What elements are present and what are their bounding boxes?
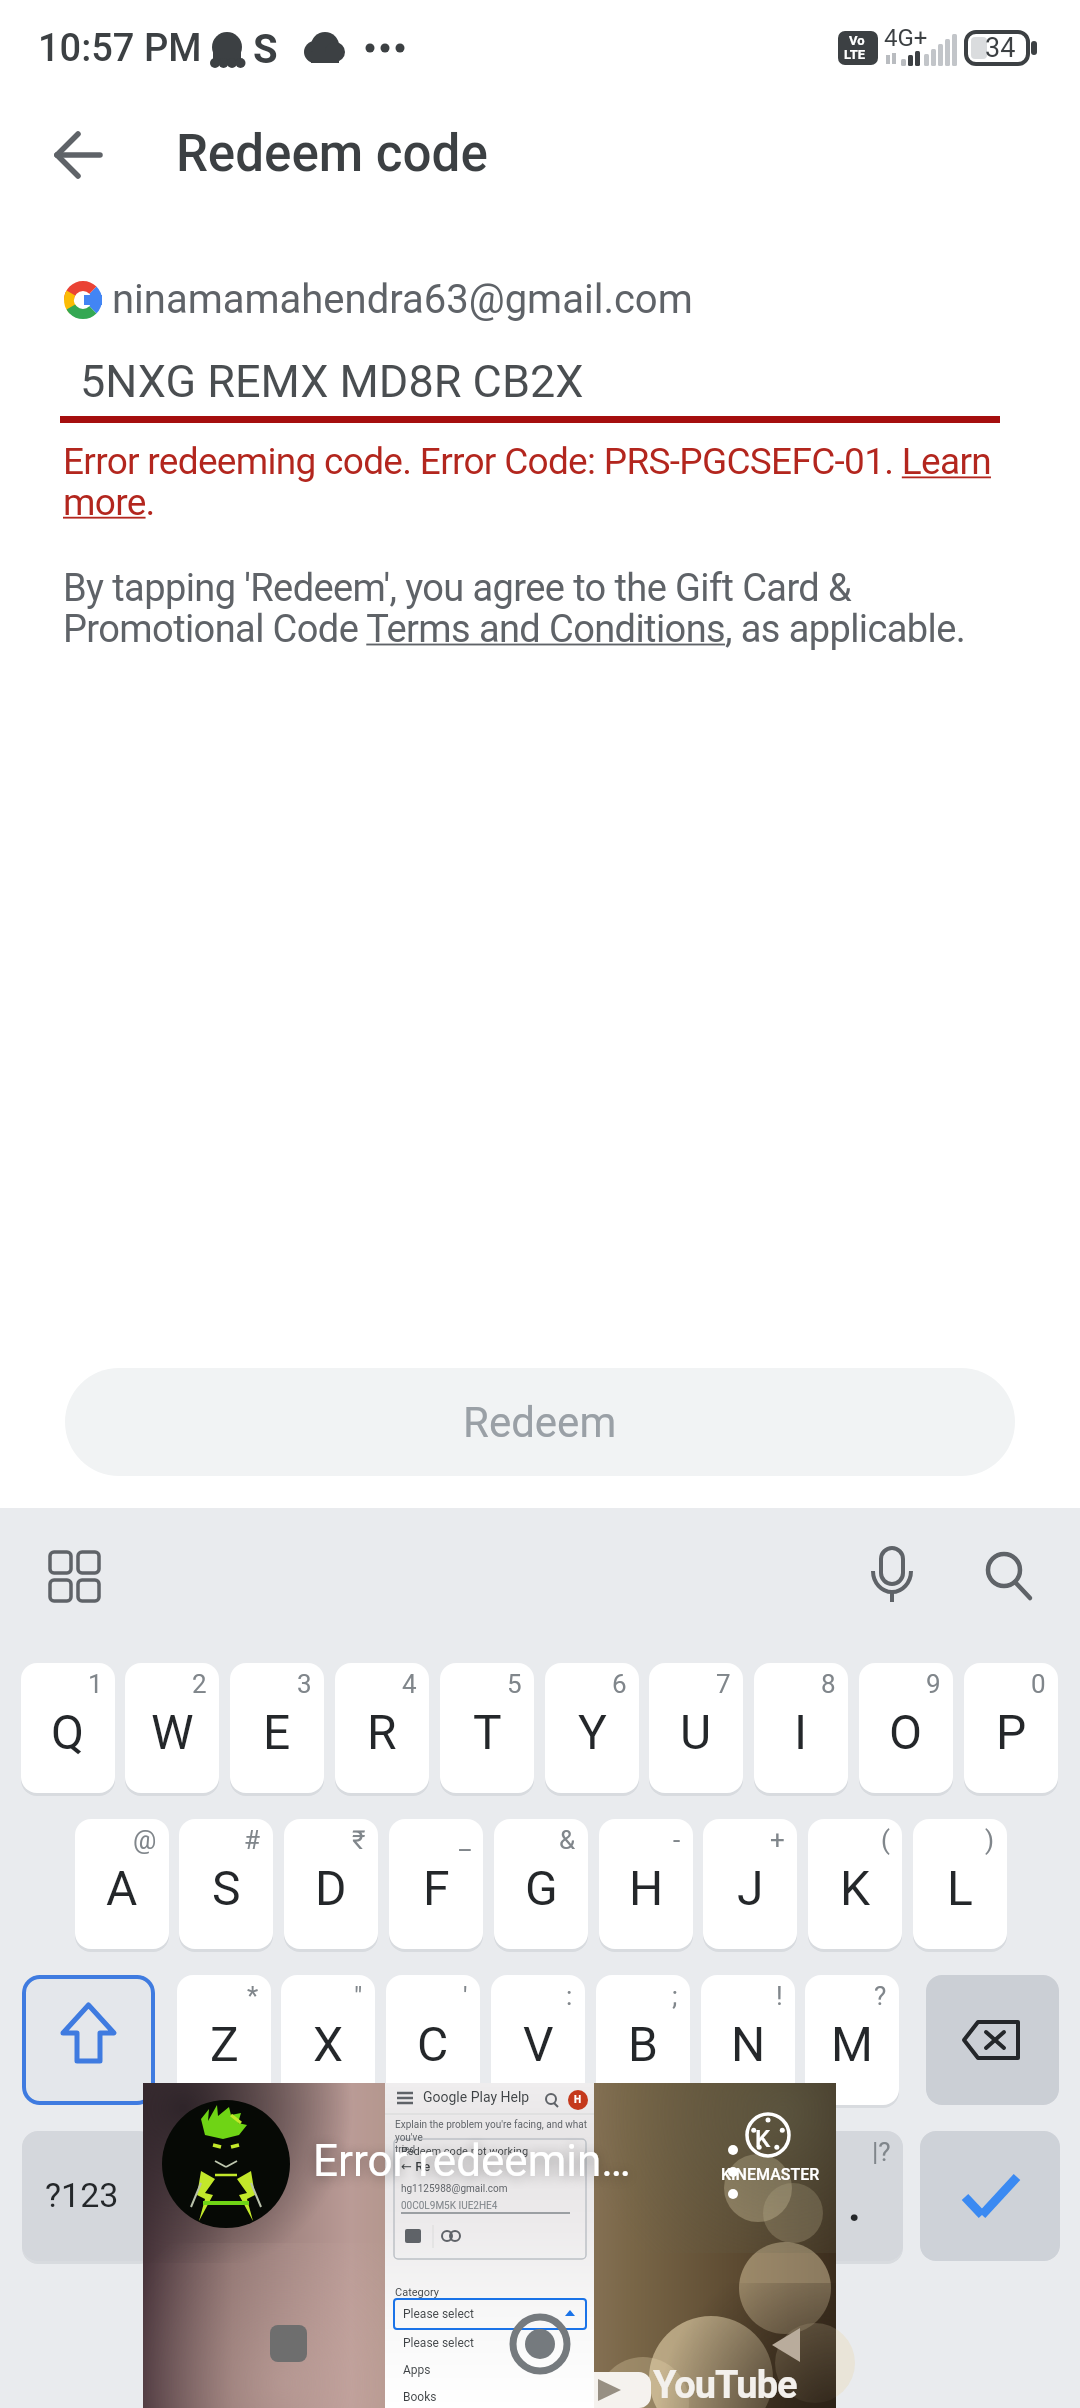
staticText: 4G+ — [884, 24, 928, 52]
button[interactable]: |? — [805, 2131, 903, 2261]
button[interactable]: 4 — [335, 1663, 429, 1793]
staticText: P — [996, 1704, 1027, 1760]
button[interactable]: * — [177, 1975, 271, 2105]
button[interactable]: 8 — [754, 1663, 848, 1793]
staticText: 5NXG REMX MD8R CB2X — [80, 355, 584, 408]
button[interactable]: 7 — [649, 1663, 743, 1793]
staticText: Error redeeming code. Error Code: PRS-PG… — [63, 440, 991, 524]
staticText: 5 — [507, 1669, 522, 1699]
staticText: H — [629, 1860, 664, 1916]
staticText: Google Play Help — [423, 2089, 530, 2105]
button[interactable]: ? — [805, 1975, 899, 2105]
staticText: ninamamahendra63@gmail.com — [112, 276, 693, 323]
button[interactable]: ! — [701, 1975, 795, 2105]
staticText: ) — [985, 1825, 995, 1855]
button[interactable]: 9 — [859, 1663, 953, 1793]
staticText: F — [423, 1860, 450, 1916]
staticText: * — [247, 1981, 259, 2011]
staticText: Redeem — [463, 1398, 617, 1447]
staticText: ? — [874, 1981, 887, 2011]
staticText: 0 — [1031, 1669, 1046, 1699]
staticText: & — [559, 1825, 576, 1855]
staticText: N — [731, 2016, 766, 2072]
staticText: W — [151, 1704, 194, 1760]
staticText: J — [737, 1860, 764, 1916]
staticText: Redeem code not working — [401, 2145, 529, 2158]
staticText: 34 — [985, 32, 1016, 64]
staticText: 6 — [612, 1669, 627, 1699]
button[interactable]: + — [703, 1819, 797, 1949]
button[interactable] — [22, 1975, 155, 2105]
staticText: Please select — [403, 2336, 474, 2350]
staticText: |? — [872, 2137, 891, 2167]
button[interactable]: Redeem — [65, 1368, 1015, 1476]
button[interactable] — [22, 2131, 155, 2261]
staticText: LTE — [844, 47, 866, 62]
button[interactable]: ) — [913, 1819, 1007, 1949]
staticText: R — [367, 1704, 397, 1760]
staticText: 3 — [297, 1669, 312, 1699]
staticText: @ — [133, 1825, 157, 1855]
staticText: S — [212, 1860, 241, 1916]
staticText: ' — [463, 1981, 468, 2011]
staticText: 1 — [88, 1669, 103, 1699]
button[interactable]: 0 — [964, 1663, 1058, 1793]
button[interactable]: : — [491, 1975, 585, 2105]
button[interactable]: - — [599, 1819, 693, 1949]
staticText: ( — [881, 1825, 890, 1855]
staticText: + — [770, 1825, 785, 1855]
button[interactable]: # — [179, 1819, 273, 1949]
button[interactable]: 6 — [545, 1663, 639, 1793]
staticText: hg1125988@gmail.com — [401, 2183, 508, 2195]
staticText: 2 — [192, 1669, 207, 1699]
staticText: Y — [578, 1704, 607, 1760]
staticText: V — [523, 2016, 554, 2072]
button[interactable]: @ — [75, 1819, 169, 1949]
staticText: S — [253, 26, 278, 73]
button[interactable]: & — [494, 1819, 588, 1949]
staticText: By tapping 'Redeem', you agree to the Gi… — [63, 566, 966, 651]
button[interactable]: ( — [808, 1819, 902, 1949]
button[interactable]: " — [281, 1975, 375, 2105]
staticText: Q — [51, 1704, 85, 1760]
staticText: Z — [210, 2016, 239, 2072]
staticText: B — [628, 2016, 658, 2072]
button[interactable]: 2 — [125, 1663, 219, 1793]
staticText: # — [244, 1825, 261, 1855]
button[interactable]: 3 — [230, 1663, 324, 1793]
staticText: Error redeemin… — [313, 2135, 631, 2187]
staticText: L — [947, 1860, 973, 1916]
staticText: E — [263, 1704, 291, 1760]
button[interactable] — [40, 124, 104, 188]
staticText: T — [473, 1704, 502, 1760]
staticText: KINEMASTER — [721, 2165, 820, 2184]
button[interactable]: 5 — [440, 1663, 534, 1793]
staticText: . — [848, 2180, 861, 2232]
staticText: G — [525, 1860, 558, 1916]
button[interactable]: ; — [596, 1975, 690, 2105]
button[interactable]: ₹ — [284, 1819, 378, 1949]
staticText: H — [574, 2094, 582, 2106]
staticText: Explain the problem you're facing, and w… — [395, 2119, 604, 2155]
button[interactable] — [926, 1975, 1059, 2105]
staticText: 8 — [821, 1669, 836, 1699]
staticText: 4 — [402, 1669, 417, 1699]
staticText: - — [673, 1825, 681, 1855]
staticText: M — [831, 2016, 873, 2072]
button[interactable]: ' — [386, 1975, 480, 2105]
staticText: K — [840, 1860, 871, 1916]
staticText: K — [755, 2125, 771, 2153]
staticText: D — [315, 1860, 347, 1916]
staticText: ← Re — [401, 2159, 431, 2174]
button[interactable] — [920, 2131, 1060, 2261]
staticText: : — [566, 1981, 573, 2011]
staticText: U — [680, 1704, 712, 1760]
button[interactable]: 1 — [21, 1663, 115, 1793]
button[interactable]: Google Play Help — [143, 2083, 836, 2408]
staticText: O — [889, 1704, 923, 1760]
staticText: ₹ — [352, 1825, 366, 1855]
staticText: ! — [776, 1981, 783, 2011]
staticText: Vo — [849, 33, 865, 48]
button[interactable]: _ — [389, 1819, 483, 1949]
staticText: YouTube — [653, 2363, 797, 2408]
